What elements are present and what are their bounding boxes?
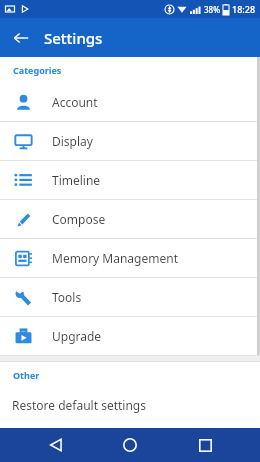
staticText: Upgrade — [52, 328, 102, 344]
button[interactable]: Recent apps — [186, 428, 224, 462]
staticText: 38% — [204, 4, 220, 15]
staticText: Other — [13, 369, 40, 381]
button[interactable]: Back — [6, 23, 36, 53]
button[interactable]: Home — [111, 428, 149, 462]
staticText: Account — [52, 94, 98, 110]
staticText: Settings — [44, 28, 103, 48]
staticText: Categories — [13, 64, 62, 76]
button[interactable]: Restore default settings — [0, 388, 260, 422]
staticText: 18:28 — [232, 3, 256, 15]
staticText: Tools — [52, 289, 82, 305]
staticText: Restore default settings — [12, 397, 146, 413]
button[interactable]: Account — [0, 83, 260, 121]
staticText: Memory Management — [52, 250, 178, 266]
button[interactable]: Memory Management — [0, 239, 260, 277]
staticText: Timeline — [52, 172, 101, 188]
button[interactable]: Compose — [0, 200, 260, 238]
button[interactable]: Upgrade — [0, 317, 260, 355]
button[interactable]: Display — [0, 122, 260, 160]
button[interactable]: Back — [37, 428, 75, 462]
button[interactable]: Timeline — [0, 161, 260, 199]
staticText: Display — [52, 133, 93, 149]
staticText: Compose — [52, 211, 106, 227]
button[interactable]: Tools — [0, 278, 260, 316]
